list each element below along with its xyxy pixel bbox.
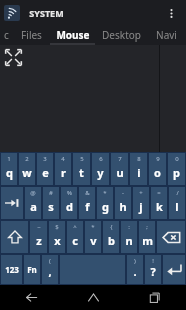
- staticText: SYSTEM: [29, 7, 64, 19]
- button[interactable]: 6: [92, 153, 109, 185]
- staticText: g: [102, 199, 109, 214]
- button[interactable]: &: [79, 187, 95, 219]
- button[interactable]: Desktop: [95, 25, 147, 45]
- staticText: :: [128, 223, 130, 231]
- staticText: c: [4, 28, 9, 42]
- button[interactable]: Fn: [24, 255, 40, 284]
- button[interactable]: Home: [62, 285, 124, 310]
- button[interactable]: Fullscreen: [2, 46, 25, 69]
- staticText: Fn: [27, 264, 37, 275]
- staticText: j: [139, 199, 143, 214]
- button[interactable]: $: [49, 221, 65, 253]
- staticText: r: [61, 165, 66, 180]
- staticText: o: [154, 165, 161, 180]
- staticText: &: [85, 189, 90, 197]
- button[interactable]: Backspace: [157, 221, 185, 253]
- button[interactable]: Recents: [124, 285, 186, 310]
- staticText: *: [103, 189, 107, 197]
- button[interactable]: Back: [0, 285, 62, 310]
- button[interactable]: 3: [37, 153, 53, 185]
- staticText: ^: [73, 223, 77, 231]
- button[interactable]: @: [25, 187, 41, 219]
- button[interactable]: %: [61, 187, 77, 219]
- staticText: ,: [48, 264, 52, 279]
- staticText: !: [152, 257, 154, 265]
- button[interactable]: ~: [30, 221, 47, 253]
- button[interactable]: :: [121, 221, 137, 253]
- staticText: 123: [5, 264, 19, 275]
- staticText: h: [119, 199, 127, 214]
- staticText: u: [116, 165, 124, 180]
- staticText: e: [42, 165, 49, 180]
- staticText: m: [142, 233, 153, 248]
- staticText: ?: [150, 264, 156, 279]
- staticText: Files: [21, 28, 42, 42]
- staticText: b: [108, 233, 115, 248]
- staticText: 2: [25, 155, 29, 163]
- staticText: $: [55, 223, 59, 231]
- button[interactable]: ;: [139, 221, 155, 253]
- staticText: %: [67, 189, 72, 197]
- button[interactable]: +: [133, 187, 149, 219]
- button[interactable]: Shift: [1, 221, 28, 253]
- button[interactable]: 7: [111, 153, 128, 185]
- button[interactable]: 123: [1, 255, 22, 284]
- button[interactable]: Enter: [163, 255, 185, 284]
- button[interactable]: #: [43, 187, 59, 219]
- button[interactable]: 1: [1, 153, 17, 185]
- staticText: x: [54, 233, 61, 248]
- button[interactable]: *: [97, 187, 113, 219]
- button[interactable]: *: [85, 221, 101, 253]
- staticText: 8: [137, 155, 141, 163]
- button[interactable]: Files: [13, 25, 50, 45]
- button[interactable]: ^: [67, 221, 83, 253]
- button[interactable]: =: [151, 187, 167, 219]
- staticText: 1: [7, 155, 11, 163]
- button[interactable]: Tab: [1, 187, 23, 219]
- button[interactable]: 0: [168, 153, 185, 185]
- staticText: 9: [156, 155, 160, 163]
- staticText: i: [137, 165, 141, 180]
- button[interactable]: !: [145, 255, 161, 284]
- staticText: p: [173, 165, 180, 180]
- staticText: /: [176, 189, 179, 197]
- staticText: Mouse: [56, 28, 90, 42]
- staticText: k: [156, 199, 163, 214]
- staticText: v: [90, 233, 97, 248]
- button[interactable]: Navi: [147, 25, 186, 45]
- staticText: f: [85, 199, 90, 214]
- staticText: +: [139, 189, 143, 197]
- staticText: q: [6, 165, 13, 180]
- staticText: Desktop: [102, 28, 141, 42]
- button[interactable]: 9: [149, 153, 166, 185]
- staticText: 6: [99, 155, 103, 163]
- staticText: n: [125, 233, 133, 248]
- staticText: 7: [118, 155, 122, 163]
- staticText: ;: [146, 223, 148, 231]
- staticText: @: [30, 189, 36, 197]
- button[interactable]: More options: [160, 2, 182, 24]
- button[interactable]: {: [103, 221, 119, 253]
- button[interactable]: 4: [55, 153, 71, 185]
- button[interactable]: Mouse: [50, 25, 95, 45]
- button[interactable]: 2: [19, 153, 35, 185]
- button[interactable]: 8: [130, 153, 147, 185]
- staticText: t: [79, 165, 84, 180]
- staticText: y: [97, 165, 104, 180]
- staticText: 3: [43, 155, 47, 163]
- button[interactable]: 5: [73, 153, 90, 185]
- button[interactable]: /: [169, 187, 185, 219]
- button[interactable]: c: [0, 25, 13, 45]
- staticText: d: [66, 199, 73, 214]
- staticText: w: [22, 165, 32, 180]
- button[interactable]: -: [115, 187, 131, 219]
- button[interactable]: ): [127, 255, 143, 284]
- staticText: *: [91, 223, 95, 231]
- staticText: l: [175, 199, 179, 214]
- button[interactable]: App icon: [4, 5, 20, 21]
- button[interactable]: (: [42, 255, 58, 284]
- staticText: {: [110, 223, 113, 231]
- staticText: ~: [37, 223, 41, 231]
- staticText: 4: [61, 155, 65, 163]
